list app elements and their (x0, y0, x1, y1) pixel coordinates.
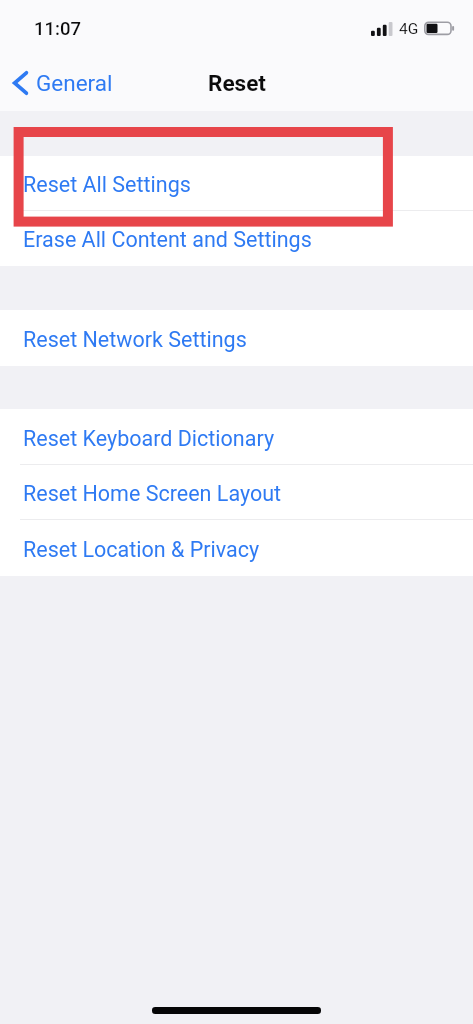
staticText: 4G (399, 20, 419, 38)
button[interactable]: Reset All Settings (0, 156, 473, 211)
button[interactable]: Reset Network Settings (0, 310, 473, 366)
other: Battery (424, 21, 454, 36)
staticText: Reset Keyboard Dictionary (23, 426, 275, 451)
staticText: Erase All Content and Settings (23, 227, 312, 252)
button[interactable]: Erase All Content and Settings (0, 211, 473, 266)
other: Cellular signal (371, 22, 393, 36)
button[interactable]: Reset Home Screen Layout (0, 465, 473, 520)
staticText: General (36, 70, 113, 96)
staticText: Reset All Settings (23, 172, 191, 197)
button[interactable]: Back to General (0, 65, 123, 101)
button[interactable]: Reset Keyboard Dictionary (0, 409, 473, 465)
other: Back to General (13, 70, 29, 96)
staticText: Reset Network Settings (23, 327, 247, 352)
staticText: 11:07 (34, 18, 81, 40)
staticText: Reset (208, 70, 266, 96)
staticText: Reset Home Screen Layout (23, 481, 282, 506)
button[interactable]: Reset Location & Privacy (0, 520, 473, 576)
staticText: Reset Location & Privacy (23, 537, 260, 562)
